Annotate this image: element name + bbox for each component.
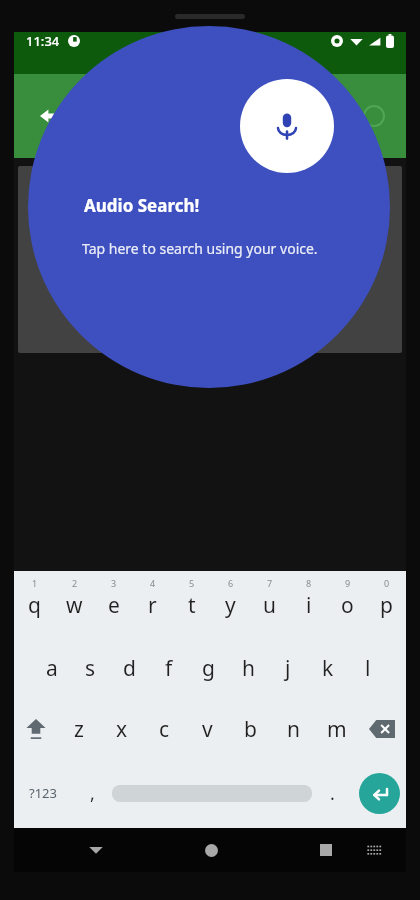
button[interactable]: s xyxy=(71,643,110,693)
staticText: l xyxy=(365,654,371,683)
button[interactable]: Backspace xyxy=(358,703,406,755)
staticText: n xyxy=(287,715,300,744)
staticText: o xyxy=(341,591,354,620)
button[interactable]: 3 xyxy=(94,577,133,633)
button[interactable]: c xyxy=(143,703,186,755)
button[interactable]: 4 xyxy=(133,577,172,633)
staticText: 11:34 xyxy=(26,32,60,50)
staticText: a xyxy=(46,654,58,683)
staticText: e xyxy=(108,591,120,620)
button[interactable]: Back xyxy=(26,96,66,136)
staticText: Audio Search! xyxy=(84,194,200,217)
button[interactable]: 2 xyxy=(54,577,94,633)
staticText: , xyxy=(90,781,95,806)
staticText: 0 xyxy=(384,577,390,589)
button[interactable]: Your music xyxy=(18,166,402,353)
staticText: b xyxy=(244,715,257,744)
button[interactable]: 5 xyxy=(172,577,211,633)
staticText: 1 xyxy=(32,577,38,589)
button[interactable]: k xyxy=(308,643,348,693)
button[interactable]: 9 xyxy=(328,577,367,633)
button[interactable]: Enter xyxy=(352,767,406,819)
staticText: m xyxy=(327,715,347,744)
staticText: w xyxy=(66,591,83,620)
button[interactable]: z xyxy=(58,703,100,755)
button[interactable]: Switch keyboard xyxy=(356,832,392,868)
staticText: v xyxy=(202,715,213,744)
staticText: ?123 xyxy=(29,784,57,802)
button[interactable]: l xyxy=(348,643,388,693)
staticText: t xyxy=(188,591,196,620)
staticText: u xyxy=(263,591,276,620)
staticText: k xyxy=(322,654,334,683)
button[interactable]: Hide keyboard xyxy=(76,830,116,870)
button[interactable]: g xyxy=(188,643,228,693)
button[interactable]: 8 xyxy=(289,577,328,633)
staticText: y xyxy=(225,591,236,620)
button[interactable]: Space xyxy=(112,767,312,819)
button[interactable]: 1 xyxy=(14,577,54,633)
button[interactable]: n xyxy=(272,703,315,755)
button[interactable]: a xyxy=(32,643,71,693)
button[interactable]: f xyxy=(149,643,188,693)
button[interactable]: b xyxy=(229,703,272,755)
button[interactable]: Voice search xyxy=(314,96,354,136)
staticText: f xyxy=(165,654,173,683)
button[interactable]: h xyxy=(228,643,268,693)
button[interactable]: , xyxy=(72,767,112,819)
button[interactable]: d xyxy=(110,643,149,693)
staticText: 2 xyxy=(72,577,78,589)
staticText: s xyxy=(85,654,96,683)
staticText: 6 xyxy=(228,577,234,589)
staticText: h xyxy=(242,654,255,683)
staticText: Tap here to search using your voice. xyxy=(82,239,318,258)
button[interactable]: Audio search xyxy=(240,79,334,173)
button[interactable]: 0 xyxy=(367,577,406,633)
button[interactable]: j xyxy=(268,643,308,693)
staticText: q xyxy=(28,591,41,620)
staticText: 8 xyxy=(306,577,312,589)
button[interactable]: Shift xyxy=(14,703,58,755)
button[interactable]: ?123 xyxy=(14,767,72,819)
staticText: 5 xyxy=(189,577,195,589)
button[interactable]: Home xyxy=(191,830,231,870)
button[interactable]: m xyxy=(315,703,358,755)
button[interactable]: . xyxy=(312,767,352,819)
staticText: i xyxy=(306,591,312,620)
staticText: 7 xyxy=(267,577,273,589)
staticText: 3 xyxy=(111,577,117,589)
button[interactable]: Help xyxy=(354,96,394,136)
staticText: x xyxy=(116,715,128,744)
button[interactable]: x xyxy=(100,703,143,755)
staticText: g xyxy=(202,654,215,683)
button[interactable]: v xyxy=(186,703,229,755)
button[interactable]: 6 xyxy=(211,577,250,633)
staticText: 4 xyxy=(150,577,156,589)
button[interactable]: 7 xyxy=(250,577,289,633)
staticText: . xyxy=(330,781,335,806)
staticText: j xyxy=(285,654,291,683)
staticText: d xyxy=(123,654,136,683)
staticText: r xyxy=(148,591,157,620)
staticText: p xyxy=(380,591,393,620)
button[interactable]: Recents xyxy=(306,830,346,870)
staticText: 9 xyxy=(345,577,351,589)
staticText: z xyxy=(74,715,84,744)
staticText: c xyxy=(159,715,170,744)
